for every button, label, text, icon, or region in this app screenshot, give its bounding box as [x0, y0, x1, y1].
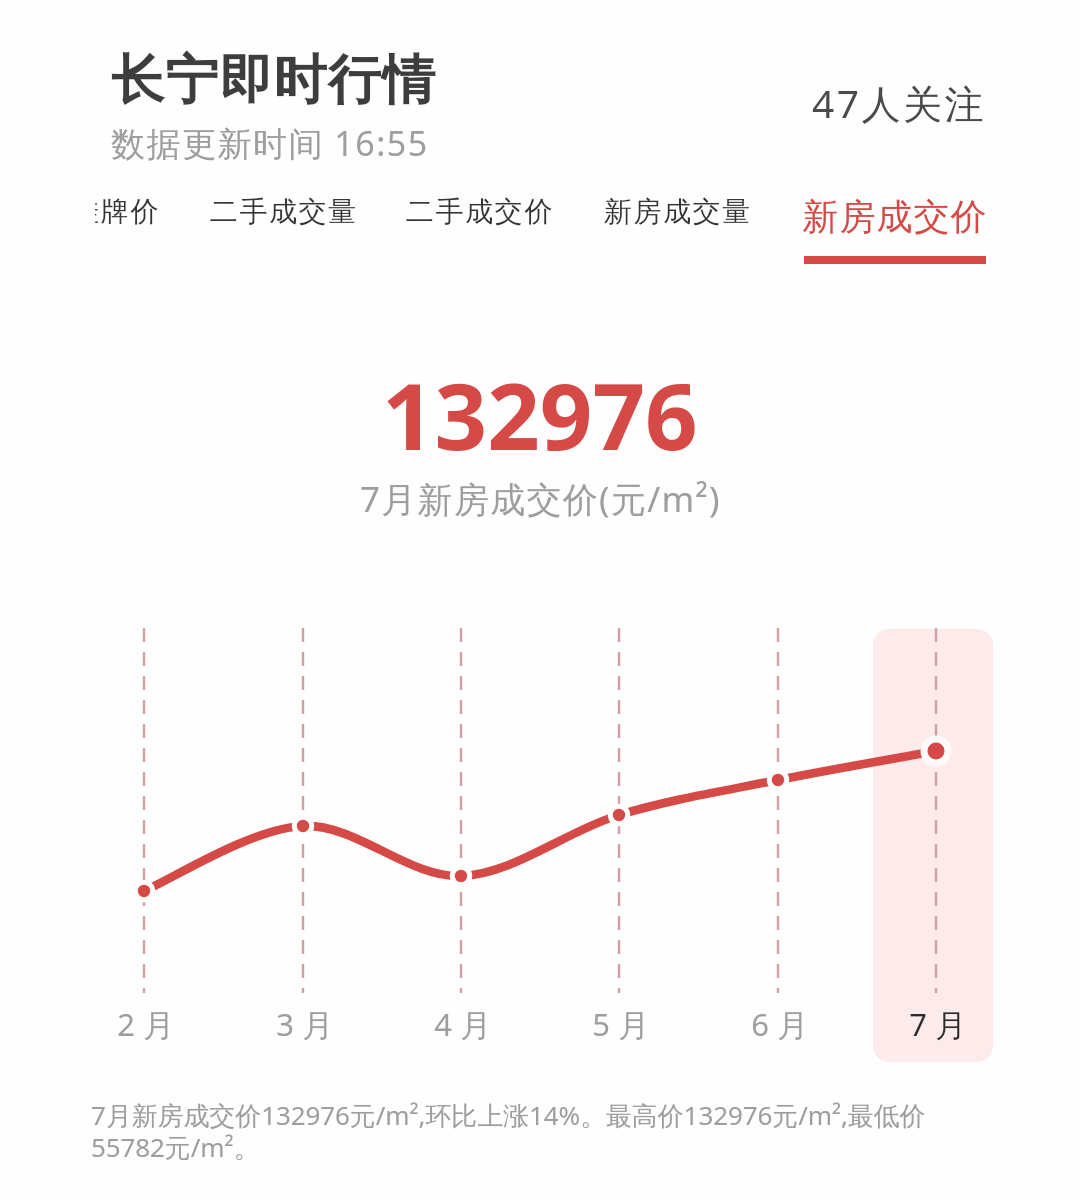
- button[interactable]: 47人关注: [792, 56, 1007, 149]
- button[interactable]: 2月: [90, 1003, 210, 1045]
- button[interactable]: 6月: [724, 1003, 844, 1045]
- button[interactable]: 7月: [882, 1003, 1002, 1045]
- staticText: 数据更新时间 16:55: [111, 120, 429, 166]
- staticText: 2月: [117, 1003, 183, 1045]
- staticText: 挂牌价: [95, 194, 160, 229]
- button[interactable]: 4月: [407, 1003, 527, 1045]
- staticText: 7月: [909, 1003, 975, 1045]
- other: 新房成交价趋势图: [0, 0, 1080, 1200]
- button[interactable]: 新房成交量: [603, 194, 751, 229]
- staticText: 二手成交价: [405, 194, 553, 229]
- staticText: 3月: [276, 1003, 342, 1045]
- staticText: 5月: [592, 1003, 658, 1045]
- staticText: 长宁即时行情: [111, 47, 437, 114]
- button[interactable]: 新房成交价: [802, 194, 987, 264]
- button[interactable]: 二手成交价: [405, 194, 553, 229]
- button[interactable]: 二手成交量: [209, 194, 357, 229]
- button[interactable]: 挂牌价: [95, 194, 160, 229]
- staticText: 二手成交量: [209, 194, 357, 229]
- staticText: 4月: [434, 1003, 500, 1045]
- staticText: 7月新房成交价132976元/m²,环比上涨14%。最高价132976元/m²,…: [91, 1097, 957, 1165]
- staticText: 47人关注: [812, 76, 987, 129]
- staticText: 新房成交价: [802, 194, 987, 239]
- button[interactable]: 5月: [565, 1003, 685, 1045]
- staticText: 6月: [751, 1003, 817, 1045]
- staticText: 新房成交量: [603, 194, 751, 229]
- staticText: 7月新房成交价(元/m²): [360, 475, 721, 523]
- button[interactable]: 3月: [249, 1003, 369, 1045]
- staticText: 132976: [382, 352, 698, 477]
